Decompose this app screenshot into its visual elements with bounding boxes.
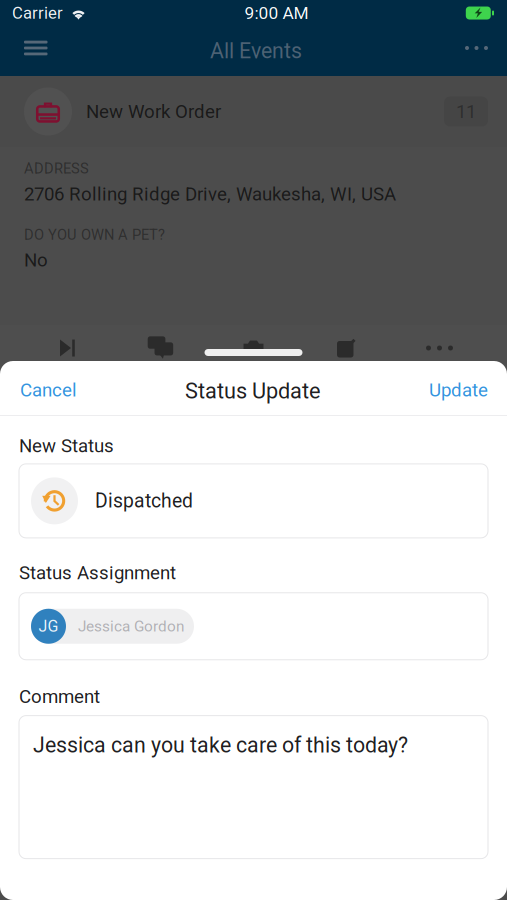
staticText: Status Update [185, 378, 321, 404]
button[interactable]: More [441, 28, 488, 68]
staticText: Update [429, 379, 488, 401]
staticText: Cancel [20, 379, 77, 401]
staticText: 11 [456, 101, 476, 122]
button[interactable]: Menu [24, 28, 71, 68]
button[interactable]: New Work Order [0, 76, 507, 147]
button[interactable]: Next [21, 339, 114, 356]
staticText: Status Assignment [19, 562, 176, 584]
staticText: Dispatched [95, 489, 193, 512]
staticText: New Work Order [86, 101, 221, 122]
staticText: Carrier [12, 3, 63, 23]
staticText: ADDRESS [24, 160, 89, 177]
button[interactable]: Dispatched [19, 464, 488, 538]
staticText: Comment [19, 686, 100, 708]
button[interactable]: Update [426, 367, 491, 409]
staticText: DO YOU OWN A PET? [24, 226, 165, 243]
staticText: 2706 Rolling Ridge Drive, Waukesha, WI, … [24, 183, 396, 205]
button[interactable]: Camera [207, 340, 300, 355]
staticText: New Status [19, 435, 114, 457]
button[interactable]: Jessica can you take care of this today? [19, 716, 488, 859]
button[interactable]: Cancel [17, 367, 80, 409]
staticText: All Events [210, 38, 302, 63]
button[interactable]: More [393, 345, 486, 350]
button[interactable]: Compose [300, 338, 393, 357]
button[interactable]: Messages [114, 336, 207, 360]
staticText: 9:00 AM [244, 3, 308, 23]
staticText: Jessica Gordon [78, 617, 184, 635]
button[interactable]: JG [19, 593, 488, 660]
staticText: No [24, 249, 48, 271]
staticText: Jessica can you take care of this today? [33, 733, 408, 758]
staticText: JG [38, 617, 58, 636]
